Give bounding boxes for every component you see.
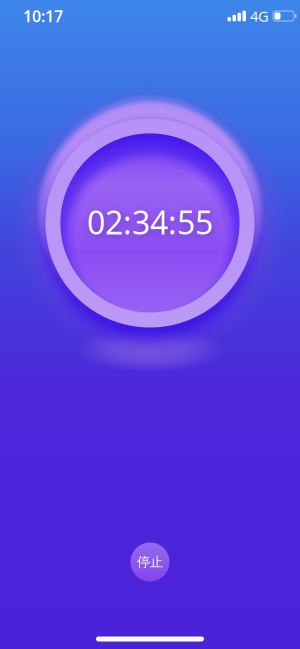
staticText: 02:34:55 [87,201,213,243]
staticText: 停止 [137,554,163,570]
button[interactable]: 停止 [130,542,169,581]
staticText: 10:17 [23,5,63,27]
staticText: 4G [250,6,269,26]
